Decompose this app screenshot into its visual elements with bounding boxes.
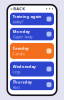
staticText: < BACK	[10, 6, 25, 11]
staticText: Rest	[12, 85, 19, 90]
button[interactable]: Thursday	[10, 79, 54, 90]
button[interactable]: More	[46, 6, 54, 11]
button[interactable]: Monday	[10, 28, 54, 40]
staticText: Monday	[12, 29, 29, 34]
staticText: Legs	[12, 69, 20, 74]
button[interactable]: Tuesday	[10, 43, 54, 59]
button[interactable]: < BACK	[10, 6, 25, 11]
staticText: Tuesday	[12, 46, 28, 51]
staticText: Upper body	[12, 34, 32, 39]
staticText: • • •	[46, 6, 54, 11]
staticText: Cardio	[12, 51, 24, 56]
staticText: today?	[12, 19, 23, 24]
staticText: Thursday	[12, 79, 31, 85]
staticText: Training again	[12, 14, 41, 19]
staticText: Wednesday	[12, 64, 35, 69]
button[interactable]: Training again	[10, 13, 54, 25]
button[interactable]: Wednesday	[10, 61, 54, 76]
